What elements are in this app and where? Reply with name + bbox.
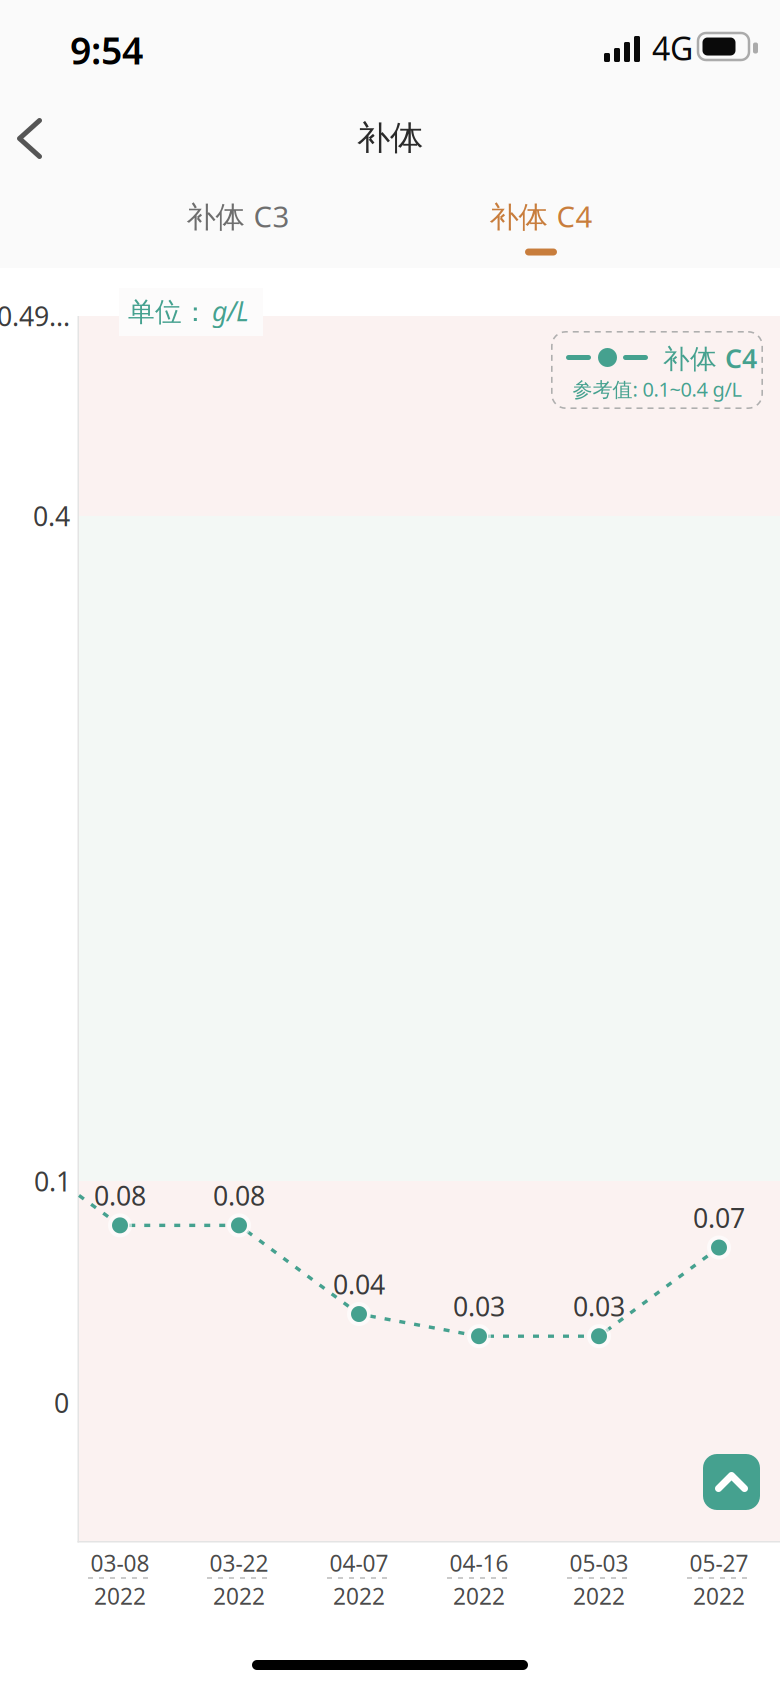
staticText: 0.04: [333, 1266, 385, 1302]
staticText: 参考值: 0.1~0.4 g/L: [572, 376, 741, 402]
staticText: 2022: [333, 1581, 385, 1611]
staticText: 0.49...: [0, 298, 70, 334]
staticText: 04-16: [449, 1548, 508, 1578]
staticText: 2022: [693, 1581, 745, 1611]
staticText: 补体 C4: [489, 196, 592, 235]
staticText: 2022: [453, 1581, 505, 1611]
staticText: 03-22: [209, 1548, 268, 1578]
staticText: 04-07: [329, 1548, 388, 1578]
staticText: 补体 C3: [186, 196, 289, 235]
staticText: 0.03: [453, 1288, 505, 1324]
staticText: 9:54: [70, 25, 143, 75]
staticText: 2022: [94, 1581, 146, 1611]
staticText: 0.03: [573, 1288, 625, 1324]
staticText: 2022: [213, 1581, 265, 1611]
staticText: 05-03: [569, 1548, 628, 1578]
button[interactable]: Back: [0, 99, 58, 177]
staticText: g/L: [212, 293, 249, 329]
staticText: 0.07: [693, 1200, 745, 1235]
staticText: 0: [54, 1385, 69, 1420]
staticText: 4G: [652, 27, 693, 69]
staticText: 0.1: [34, 1163, 71, 1199]
staticText: 05-27: [689, 1548, 748, 1578]
staticText: 2022: [573, 1581, 625, 1611]
button[interactable]: 补体 C4: [451, 186, 631, 268]
staticText: 单位：: [128, 296, 209, 328]
button[interactable]: Scroll to top: [703, 1454, 760, 1510]
staticText: 补体: [357, 117, 423, 158]
staticText: 0.08: [94, 1178, 146, 1213]
button[interactable]: 补体 C3: [148, 186, 328, 268]
staticText: 03-08: [90, 1548, 149, 1578]
staticText: 0.08: [213, 1178, 265, 1213]
staticText: 0.4: [33, 498, 70, 534]
staticText: 补体 C4: [663, 340, 757, 376]
